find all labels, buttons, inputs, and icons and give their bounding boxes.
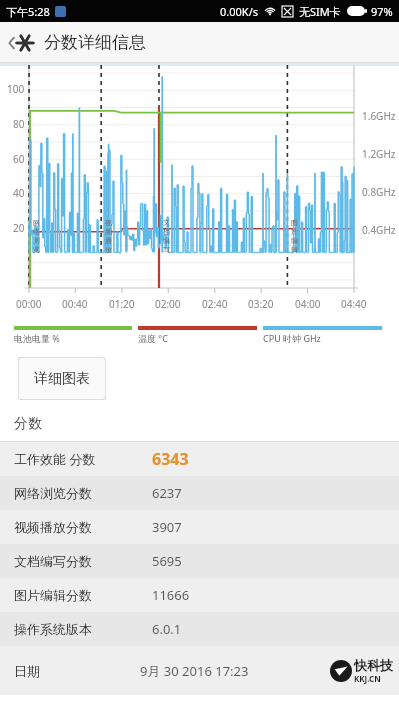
staticText: KKJ.CN [354, 673, 381, 684]
staticText: 60 [13, 152, 25, 166]
staticText: 视 [105, 218, 112, 227]
button[interactable]: 网络浏览分数 [0, 476, 399, 510]
staticText: 6237 [152, 484, 182, 502]
staticText: 图 [291, 218, 298, 227]
staticText: 编 [291, 236, 298, 245]
staticText: 11666 [152, 586, 190, 604]
staticText: 0.4GHz [362, 223, 396, 237]
staticText: 1.6GHz [362, 109, 396, 123]
staticText: CPU 时钟 GHz [263, 332, 321, 344]
staticText: 02:40 [202, 297, 228, 311]
button[interactable]: 操作系统版本 [0, 612, 399, 646]
staticText: 分数详细信息 [44, 32, 146, 53]
staticText: 9月 30 2016 17:23 [140, 662, 249, 680]
staticText: 电池电量 % [14, 332, 60, 344]
staticText: 档 [163, 227, 170, 236]
staticText: 无SIM卡 [299, 4, 341, 19]
staticText: 频 [105, 227, 112, 236]
staticText: 辑 [291, 245, 298, 254]
staticText: 放 [105, 245, 112, 254]
staticText: 00:40 [62, 297, 88, 311]
staticText: 0.00K/s [220, 4, 258, 19]
staticText: 详细图表 [34, 370, 90, 388]
staticText: 日期 [14, 663, 40, 679]
staticText: 100 [7, 82, 25, 96]
staticText: 文档编写分数 [14, 553, 92, 569]
staticText: 03:20 [248, 297, 274, 311]
button[interactable]: 工作效能 分数 [0, 442, 399, 476]
staticText: 片 [291, 227, 298, 236]
button[interactable]: 视频播放分数 [0, 510, 399, 544]
staticText: 温度 °C [138, 332, 168, 344]
staticText: 操作系统版本 [14, 621, 92, 637]
staticText: 80 [13, 117, 25, 131]
button[interactable]: Back [4, 26, 38, 60]
staticText: 04:40 [341, 297, 367, 311]
staticText: 1.2GHz [362, 147, 396, 161]
staticText: 图片编辑分数 [14, 587, 92, 603]
staticText: 络 [33, 227, 40, 236]
staticText: 播 [105, 236, 112, 245]
staticText: 浏 [33, 236, 40, 245]
button[interactable]: 图片编辑分数 [0, 578, 399, 612]
staticText: 20 [13, 221, 25, 235]
staticText: 下午5:28 [6, 4, 50, 19]
staticText: 0.8GHz [362, 185, 396, 199]
staticText: 01:20 [109, 297, 135, 311]
staticText: 快科技 [354, 657, 393, 673]
staticText: 编 [163, 236, 170, 245]
button[interactable]: 详细图表 [18, 357, 106, 400]
staticText: 6343 [152, 448, 189, 470]
staticText: 写 [163, 245, 170, 254]
staticText: 40 [13, 186, 25, 200]
staticText: 文 [163, 218, 170, 227]
staticText: 00:00 [16, 297, 42, 311]
staticText: 网 [33, 218, 40, 227]
staticText: 分数 [14, 415, 42, 433]
staticText: 5695 [152, 552, 182, 570]
staticText: 02:00 [155, 297, 181, 311]
staticText: 97% [371, 4, 393, 19]
staticText: 览 [33, 245, 40, 254]
staticText: 3907 [152, 518, 182, 536]
staticText: 04:00 [295, 297, 321, 311]
button[interactable]: 文档编写分数 [0, 544, 399, 578]
staticText: 网络浏览分数 [14, 485, 92, 501]
staticText: 工作效能 分数 [14, 450, 96, 468]
staticText: 视频播放分数 [14, 519, 92, 535]
staticText: 6.0.1 [152, 620, 182, 638]
